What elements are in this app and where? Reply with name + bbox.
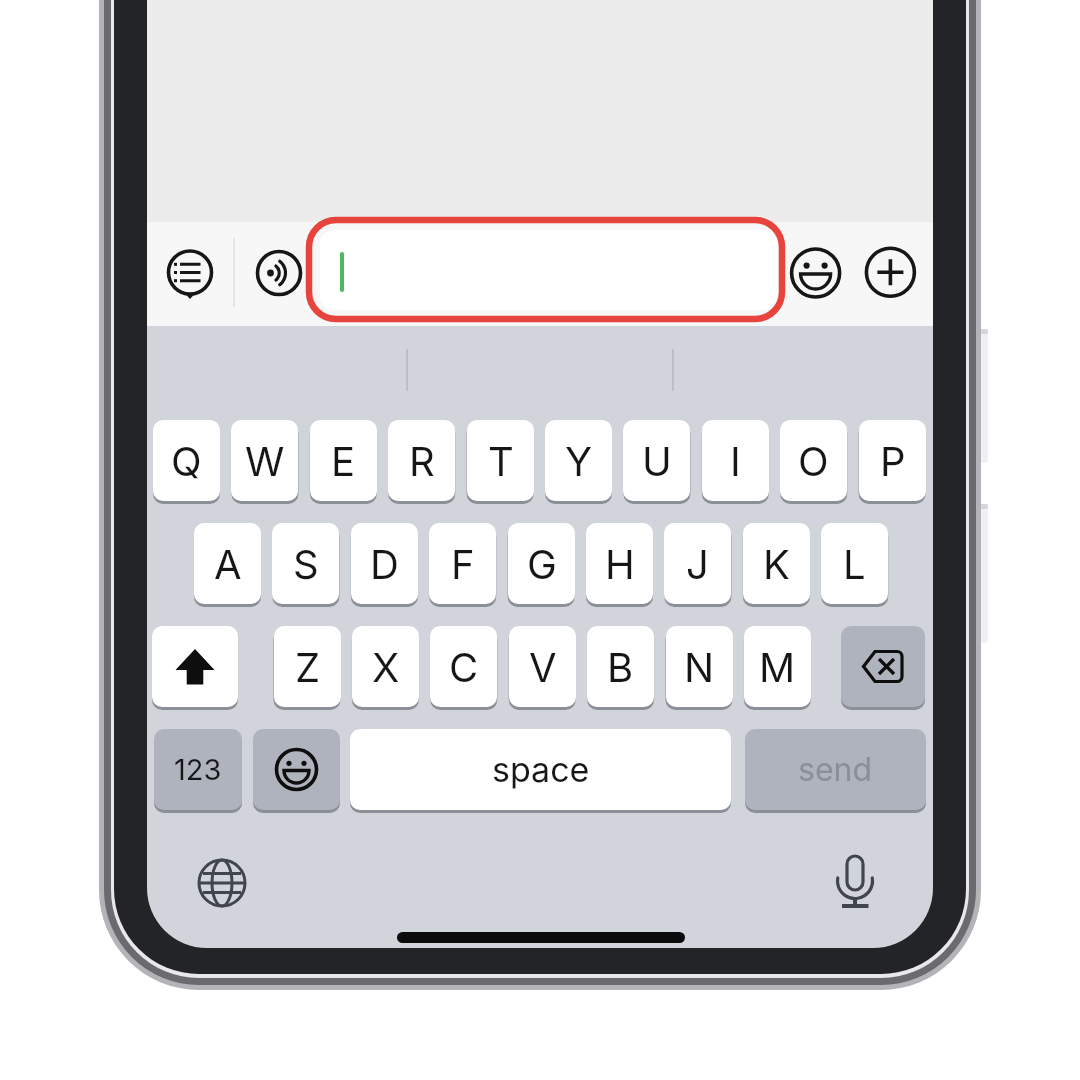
staticText: F <box>451 540 475 588</box>
staticText: R <box>409 437 435 485</box>
staticText: X <box>372 643 400 691</box>
button[interactable]: V <box>509 626 576 707</box>
button[interactable]: 123 <box>154 729 242 810</box>
button[interactable]: W <box>231 420 298 501</box>
button[interactable]: N <box>666 626 733 707</box>
staticText: O <box>798 437 829 485</box>
staticText: L <box>843 540 866 588</box>
button[interactable]: K <box>743 523 810 604</box>
staticText: W <box>245 437 285 485</box>
button[interactable]: X <box>352 626 419 707</box>
button[interactable]: Z <box>274 626 341 707</box>
button[interactable] <box>152 626 238 707</box>
button[interactable]: A <box>194 523 261 604</box>
staticText: B <box>607 643 634 691</box>
staticText: P <box>880 437 906 485</box>
button[interactable]: T <box>467 420 534 501</box>
button[interactable]: R <box>388 420 455 501</box>
button[interactable] <box>199 860 245 906</box>
button[interactable]: P <box>859 420 926 501</box>
button[interactable] <box>791 249 840 297</box>
button[interactable]: F <box>429 523 496 604</box>
staticText: send <box>798 750 873 789</box>
staticText: space <box>492 749 590 790</box>
button[interactable]: U <box>623 420 690 501</box>
button[interactable]: D <box>351 523 418 604</box>
button[interactable] <box>866 248 915 296</box>
button[interactable] <box>838 855 872 910</box>
button[interactable] <box>255 249 303 297</box>
staticText: U <box>642 437 672 485</box>
staticText: G <box>527 540 557 588</box>
button[interactable]: B <box>587 626 654 707</box>
button[interactable] <box>841 626 925 707</box>
button[interactable]: E <box>310 420 377 501</box>
staticText: M <box>759 643 796 691</box>
staticText: C <box>449 643 479 691</box>
button[interactable]: Q <box>153 420 220 501</box>
button[interactable]: Y <box>545 420 612 501</box>
button[interactable]: send <box>745 729 926 810</box>
staticText: Y <box>565 437 593 485</box>
button[interactable]: J <box>664 523 731 604</box>
button[interactable]: L <box>821 523 888 604</box>
staticText: Z <box>295 643 321 691</box>
staticText: S <box>293 540 319 588</box>
staticText: N <box>684 643 715 691</box>
button[interactable]: I <box>702 420 769 501</box>
button[interactable]: O <box>780 420 847 501</box>
staticText: A <box>214 540 242 588</box>
button[interactable]: space <box>350 729 731 810</box>
button[interactable] <box>253 729 340 810</box>
button[interactable]: S <box>272 523 339 604</box>
button[interactable] <box>320 230 777 310</box>
button[interactable]: G <box>508 523 575 604</box>
button[interactable]: C <box>430 626 497 707</box>
staticText: H <box>605 540 635 588</box>
button[interactable]: H <box>586 523 653 604</box>
staticText: 123 <box>174 752 222 787</box>
staticText: V <box>529 643 557 691</box>
staticText: I <box>730 437 741 485</box>
staticText: T <box>488 437 514 485</box>
staticText: D <box>370 540 399 588</box>
staticText: Q <box>171 437 202 485</box>
button[interactable] <box>166 249 214 303</box>
staticText: J <box>686 540 709 588</box>
staticText: E <box>331 437 356 485</box>
staticText: K <box>763 540 790 588</box>
button[interactable]: M <box>744 626 811 707</box>
